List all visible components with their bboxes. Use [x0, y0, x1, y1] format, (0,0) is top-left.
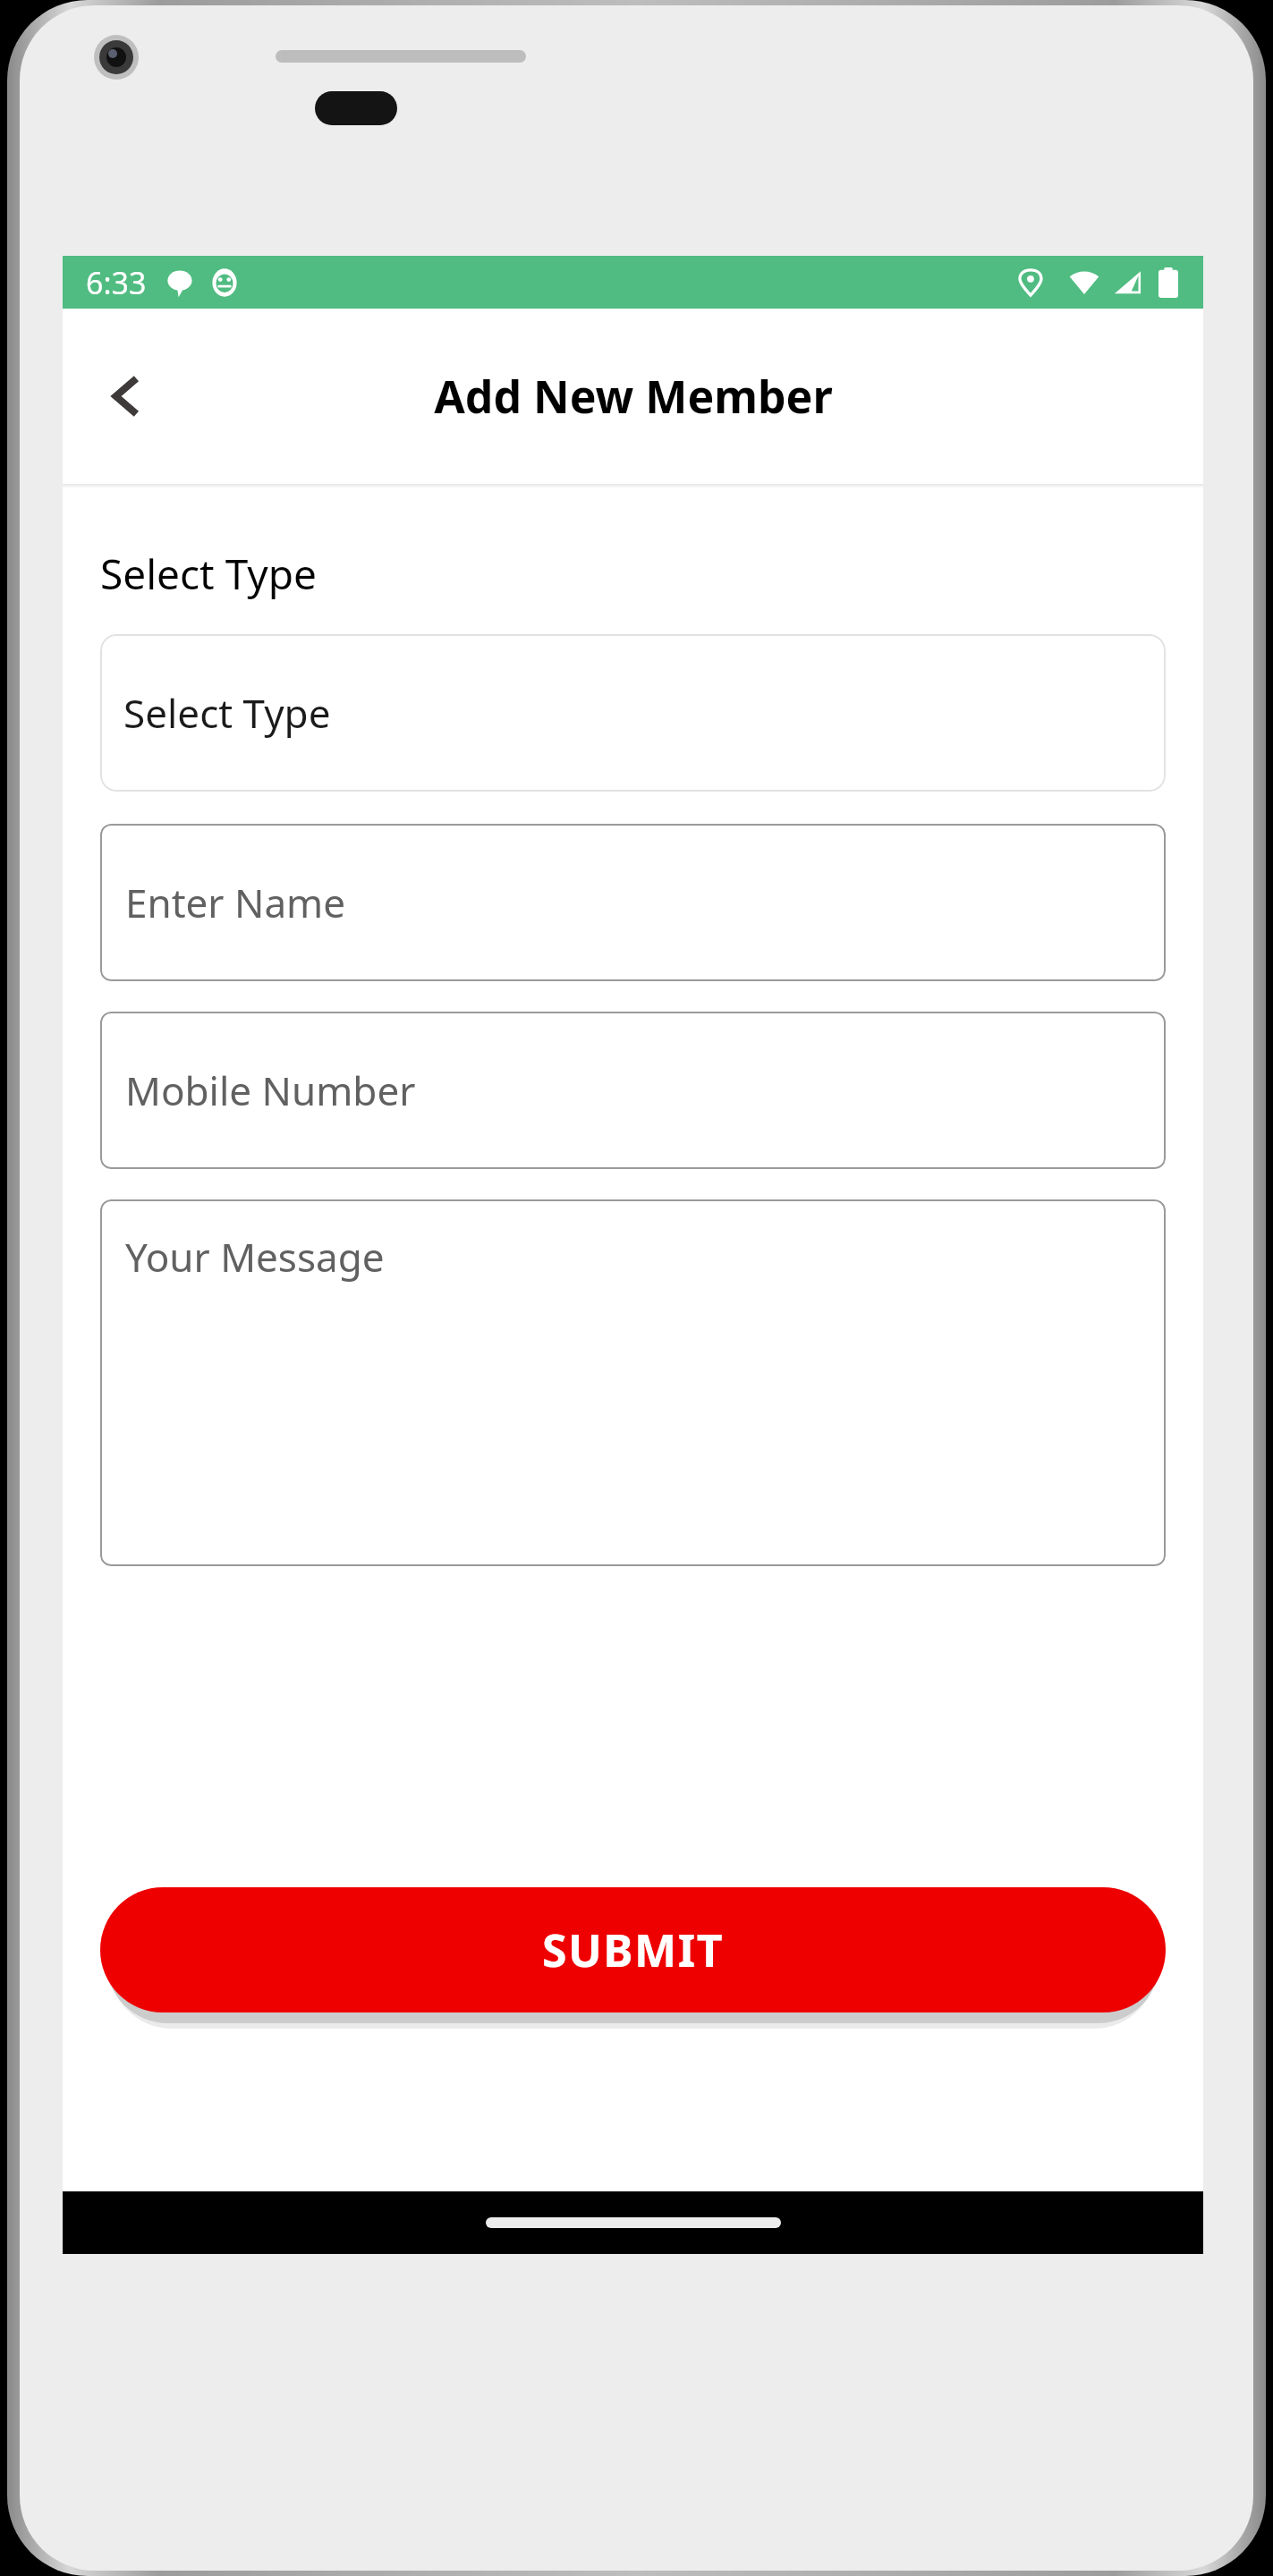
button[interactable]: SUBMIT [100, 1887, 1166, 2012]
staticText: 6:33 [86, 262, 147, 303]
button[interactable]: Enter Name [100, 824, 1166, 981]
button[interactable]: Back [84, 353, 170, 439]
button[interactable]: Home [486, 2217, 781, 2228]
staticText: Select Type [123, 686, 331, 740]
staticText: Mobile Number [125, 1063, 416, 1117]
staticText: Add New Member [434, 366, 833, 427]
staticText: Select Type [100, 546, 318, 602]
button[interactable]: Select Type [100, 634, 1166, 792]
button[interactable]: Mobile Number [100, 1012, 1166, 1169]
button[interactable]: Your Message [100, 1199, 1166, 1566]
staticText: Your Message [125, 1230, 385, 1284]
staticText: SUBMIT [542, 1919, 725, 1980]
staticText: Enter Name [125, 876, 346, 929]
